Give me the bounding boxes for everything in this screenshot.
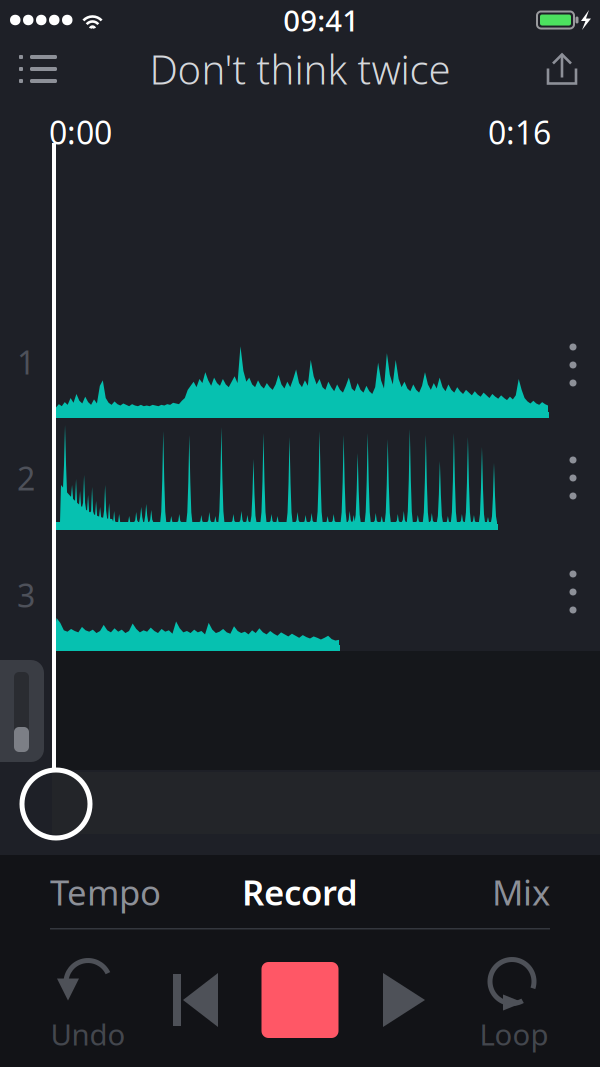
staticText: 3 <box>17 574 35 616</box>
button[interactable]: Track 3 options <box>550 562 596 622</box>
staticText: 09:41 <box>283 0 359 39</box>
staticText: Record <box>242 869 358 915</box>
button[interactable]: Loop <box>448 939 580 1067</box>
button[interactable]: Tempo <box>0 855 210 929</box>
button[interactable]: Undo <box>22 939 154 1067</box>
button[interactable]: Record <box>220 855 380 929</box>
button[interactable]: Previous <box>150 936 242 1064</box>
button[interactable]: Tracks <box>0 40 76 98</box>
button[interactable]: Share <box>524 40 600 98</box>
staticText: Mix <box>492 869 550 915</box>
button[interactable]: Play <box>358 936 450 1064</box>
button[interactable]: Track 1 options <box>550 335 596 395</box>
button[interactable]: Mix <box>390 855 600 929</box>
staticText: 1 <box>17 341 35 383</box>
staticText: Undo <box>50 1014 125 1053</box>
button[interactable]: Record <box>240 936 360 1064</box>
staticText: Don't think twice <box>149 42 450 95</box>
button[interactable]: Track 2 options <box>550 448 596 508</box>
staticText: 2 <box>17 457 35 499</box>
staticText: 0:16 <box>488 111 551 153</box>
staticText: Tempo <box>50 869 161 915</box>
staticText: 0:00 <box>49 111 112 153</box>
staticText: Loop <box>479 1014 548 1053</box>
